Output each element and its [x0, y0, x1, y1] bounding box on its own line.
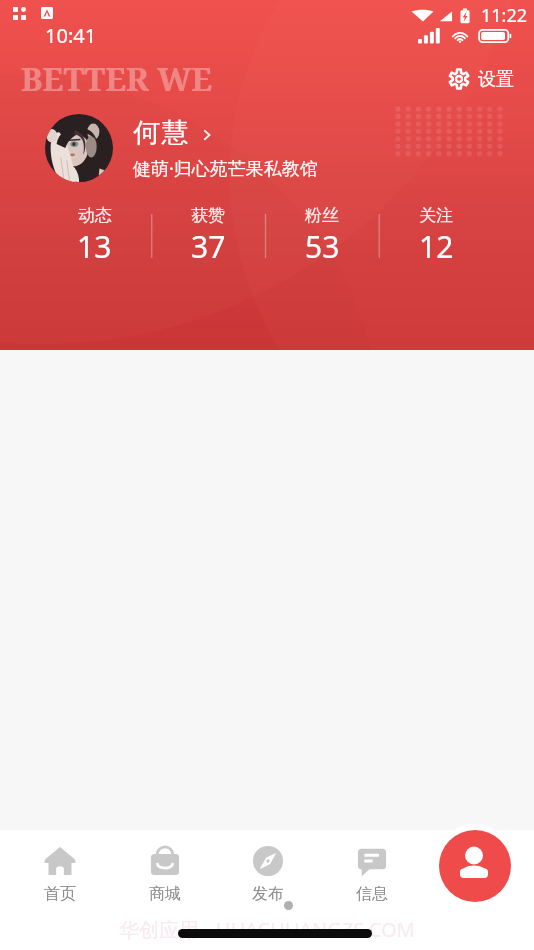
button[interactable]: 信息 [332, 838, 412, 910]
staticText: 53 [305, 226, 340, 267]
staticText: 华创应用 - HUACHUANGZS.COM [119, 916, 415, 943]
staticText: BETTER WE [21, 57, 213, 101]
button[interactable]: 获赞 [151, 205, 265, 267]
button[interactable]: 发布 [228, 838, 308, 910]
button[interactable]: 动态 [38, 205, 151, 267]
staticText: 12 [419, 226, 454, 267]
staticText: 11:22 [481, 3, 528, 28]
staticText: 粉丝 [305, 205, 339, 226]
button[interactable]: 首页 [20, 838, 100, 910]
staticText: 获赞 [191, 205, 225, 226]
staticText: 健萌·归心苑芒果私教馆 [133, 156, 318, 181]
staticText: 发布 [252, 884, 284, 904]
button[interactable]: 何慧 [45, 114, 318, 182]
staticText: 何慧 [133, 116, 191, 150]
button[interactable]: My profile [439, 830, 511, 902]
staticText: 10:41 [45, 22, 97, 49]
staticText: 设置 [478, 68, 514, 91]
button[interactable]: 设置 Settings [441, 61, 532, 97]
button[interactable]: 关注 [379, 205, 493, 267]
staticText: 关注 [419, 205, 453, 226]
staticText: 信息 [356, 884, 388, 904]
staticText: 13 [77, 226, 112, 267]
button[interactable]: 商城 [125, 838, 205, 910]
button[interactable]: 粉丝 [265, 205, 379, 267]
staticText: 首页 [44, 884, 76, 904]
staticText: 动态 [78, 205, 112, 226]
staticText: 商城 [149, 884, 181, 904]
staticText: 37 [191, 226, 226, 267]
